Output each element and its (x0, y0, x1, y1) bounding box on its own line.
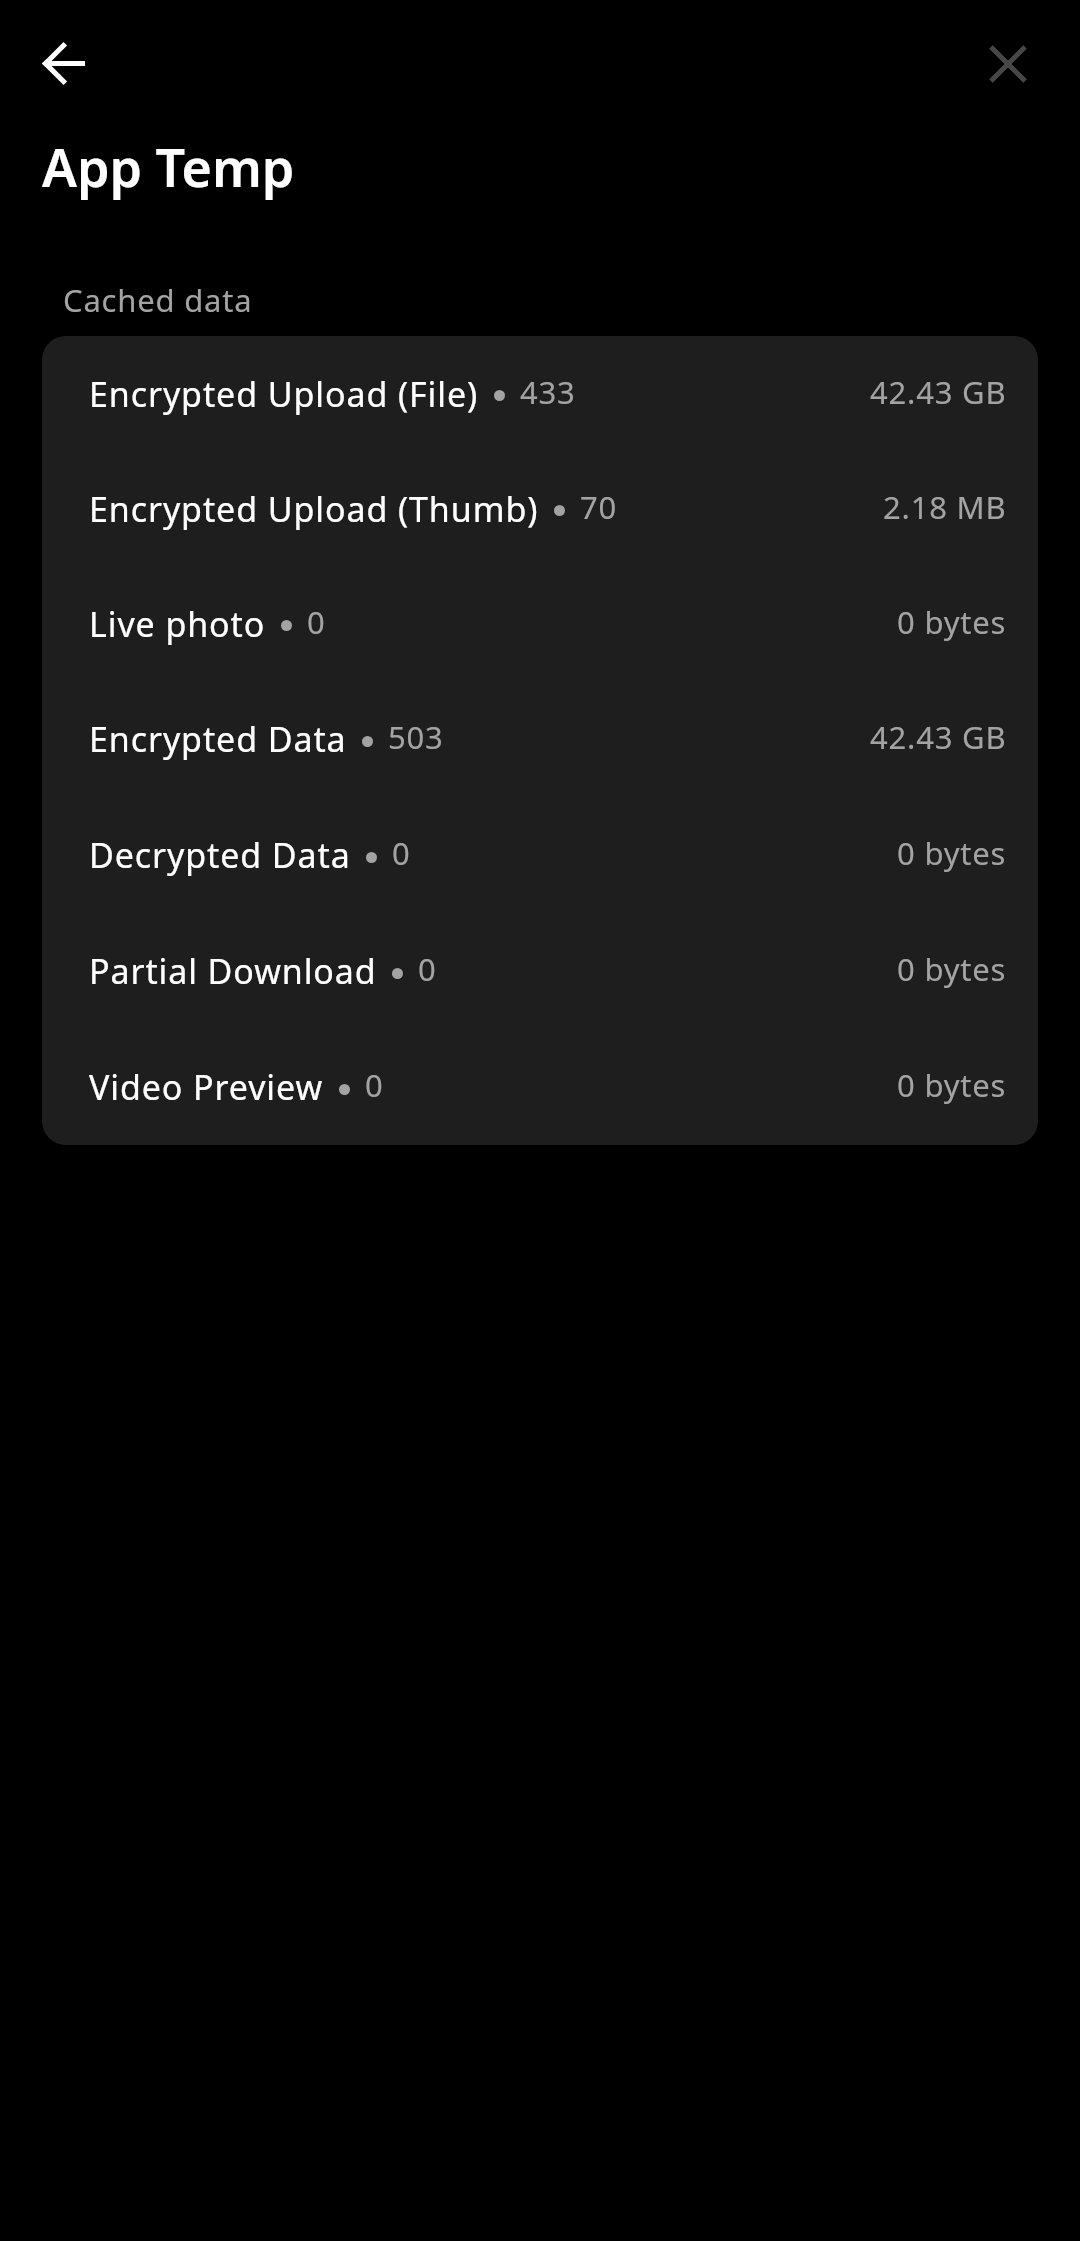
staticText: 0 bytes (897, 948, 1007, 990)
staticText: 0 bytes (897, 601, 1007, 643)
staticText: 0 bytes (897, 832, 1007, 874)
staticText: 70 (580, 486, 618, 528)
button[interactable]: Video Preview (42, 1029, 1038, 1145)
button[interactable]: Close (968, 24, 1048, 104)
button[interactable]: Decrypted Data (42, 797, 1038, 913)
staticText: Video Preview (89, 1064, 324, 1110)
staticText: Cached data (63, 279, 253, 321)
staticText: 0 bytes (897, 1064, 1007, 1106)
button[interactable]: Back (24, 23, 104, 103)
button[interactable]: Partial Download (42, 913, 1038, 1029)
staticText: 0 (392, 832, 411, 874)
staticText: 0 (365, 1064, 384, 1106)
staticText: 0 (418, 948, 437, 990)
staticText: Encrypted Upload (File) (89, 371, 479, 417)
button[interactable]: Encrypted Data (42, 681, 1038, 797)
staticText: Live photo (89, 601, 266, 647)
staticText: 433 (520, 371, 576, 413)
staticText: 0 (307, 601, 326, 643)
staticText: App Temp (42, 131, 295, 202)
button[interactable]: Encrypted Upload (Thumb) (42, 451, 1038, 566)
button[interactable]: Live photo (42, 566, 1038, 681)
staticText: 2.18 MB (883, 486, 1007, 528)
staticText: Encrypted Data (89, 716, 347, 762)
staticText: 42.43 GB (870, 716, 1007, 758)
staticText: Partial Download (89, 948, 377, 994)
staticText: 503 (388, 716, 444, 758)
staticText: Decrypted Data (89, 832, 351, 878)
staticText: Encrypted Upload (Thumb) (89, 486, 539, 532)
staticText: 42.43 GB (870, 371, 1007, 413)
button[interactable]: Encrypted Upload (File) (42, 336, 1038, 451)
